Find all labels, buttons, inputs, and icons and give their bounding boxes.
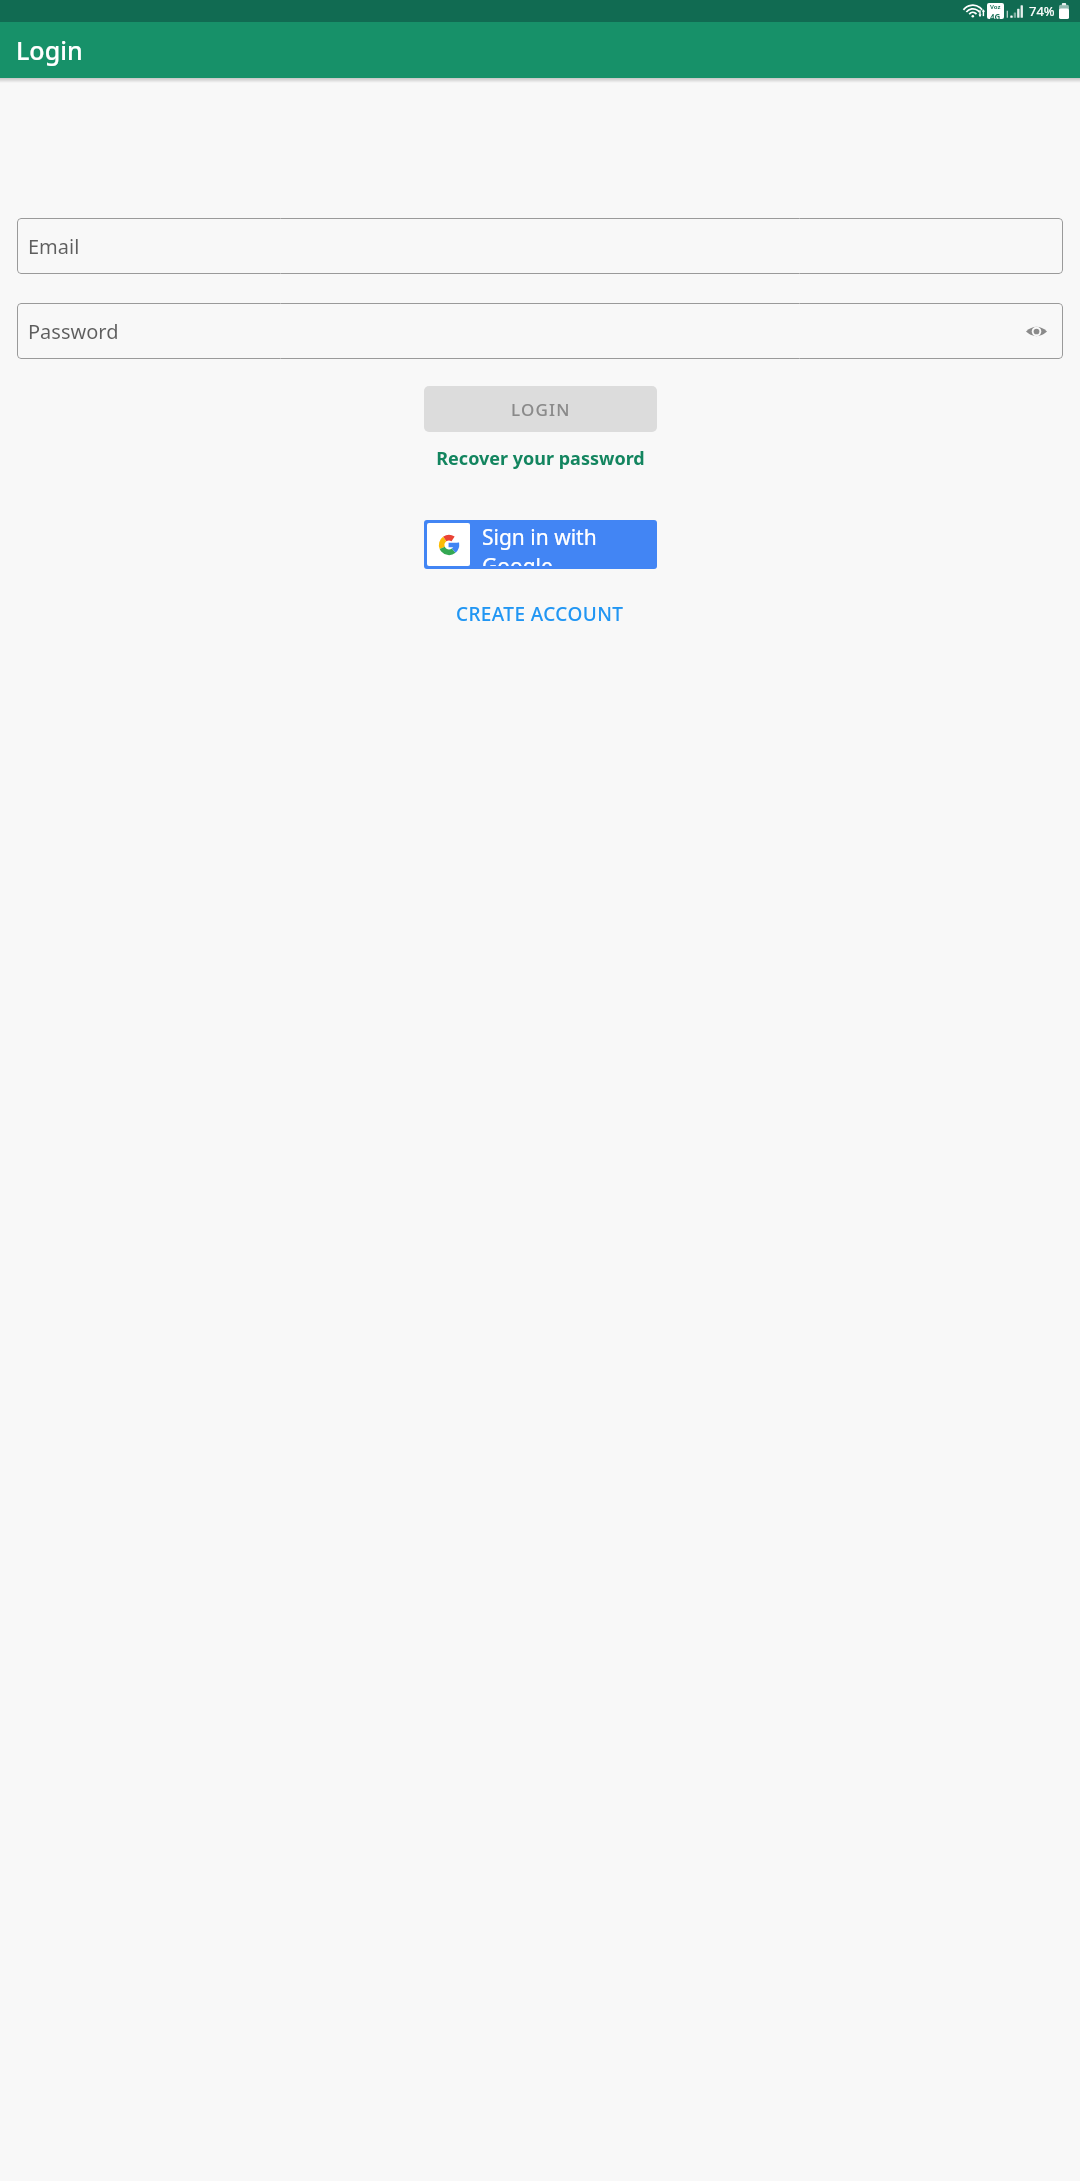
staticText: Login — [16, 33, 83, 67]
button[interactable]: Recover your password — [426, 439, 655, 478]
button[interactable]: CREATE ACCOUNT — [446, 594, 634, 634]
button[interactable]: Email — [17, 218, 1063, 274]
staticText: Email — [28, 233, 80, 260]
staticText: Sign in with Google — [482, 523, 654, 566]
staticText: LOGIN — [511, 398, 571, 421]
staticText: 74% — [1029, 2, 1055, 20]
button[interactable]: Sign in with Google — [424, 520, 657, 569]
staticText: CREATE ACCOUNT — [456, 601, 624, 627]
staticText: Password — [28, 318, 119, 345]
staticText: 4G — [990, 11, 1001, 19]
button[interactable]: Show password — [1021, 316, 1051, 346]
button[interactable]: LOGIN — [424, 386, 657, 432]
staticText: Voz — [990, 3, 1001, 11]
button[interactable]: Password — [17, 303, 1063, 359]
staticText: Recover your password — [436, 446, 645, 471]
